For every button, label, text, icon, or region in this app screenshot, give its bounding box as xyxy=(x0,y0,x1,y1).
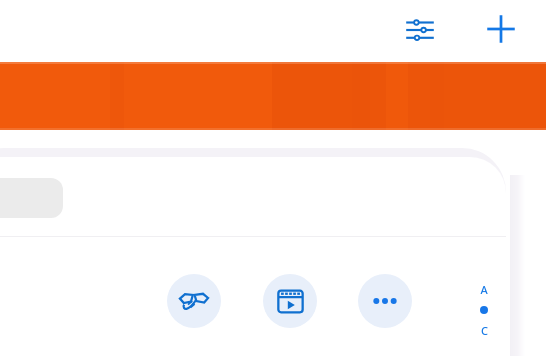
staticText: A xyxy=(480,282,488,297)
button[interactable]: Deals xyxy=(167,274,221,328)
button[interactable]: More xyxy=(358,274,412,328)
button[interactable]: Alphabet index xyxy=(472,282,496,356)
staticText: C xyxy=(481,323,488,338)
button[interactable]: Add xyxy=(477,5,525,53)
button[interactable]: Promotional banner xyxy=(0,62,546,130)
button[interactable]: Filter xyxy=(396,6,444,54)
button[interactable]: Videos xyxy=(263,274,317,328)
